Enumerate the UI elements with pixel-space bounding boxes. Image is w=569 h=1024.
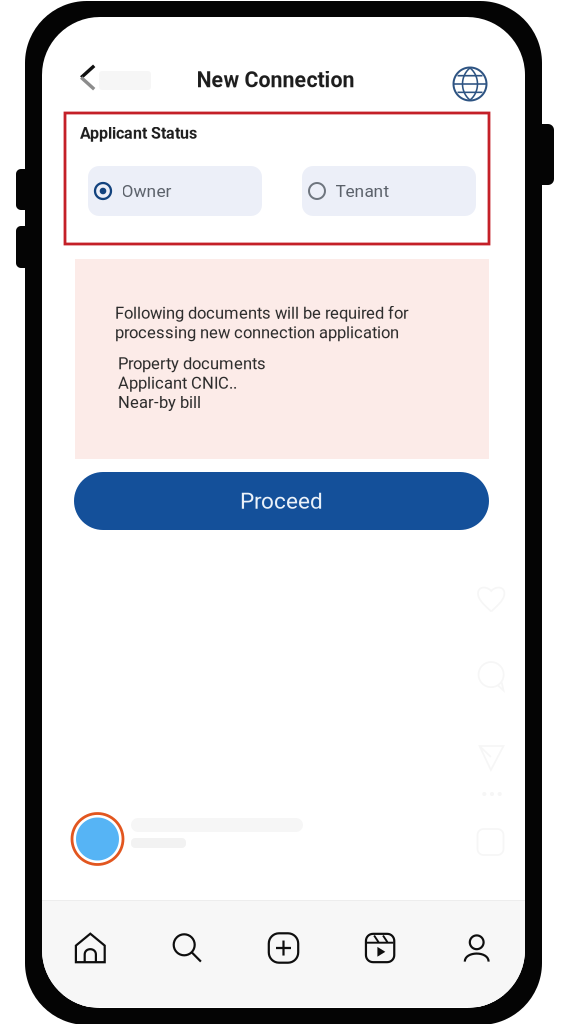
staticText: New Connection <box>196 67 354 92</box>
button[interactable]: Home <box>42 901 139 995</box>
staticText: Tenant <box>335 181 389 201</box>
button[interactable]: Search <box>139 901 235 995</box>
button[interactable]: Create <box>235 901 332 995</box>
button[interactable]: Proceed <box>74 472 489 530</box>
button[interactable]: Reels <box>332 901 428 995</box>
staticText: Following documents will be required for <box>115 303 409 323</box>
staticText: Applicant Status <box>80 124 197 143</box>
staticText: Proceed <box>240 488 323 514</box>
button[interactable]: Back <box>42 52 177 108</box>
button[interactable]: Language <box>443 57 497 111</box>
button[interactable]: Owner <box>88 166 262 216</box>
staticText: Applicant CNIC.. <box>118 373 237 393</box>
button[interactable]: Tenant <box>302 166 476 216</box>
staticText: Owner <box>121 181 171 201</box>
button[interactable]: Profile <box>428 901 525 995</box>
staticText: processing new connection application <box>115 323 399 342</box>
staticText: Near-by bill <box>118 393 201 412</box>
staticText: Property documents <box>118 354 266 373</box>
